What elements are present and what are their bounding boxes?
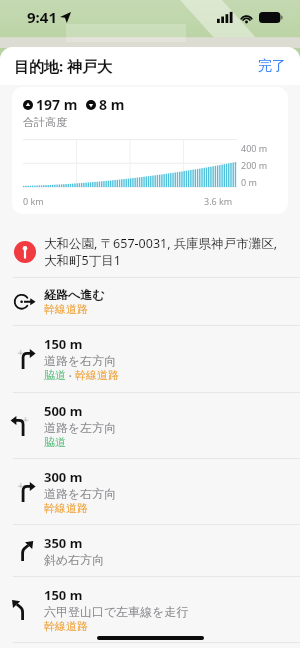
other: Turn right [13,480,37,504]
staticText: 脇道 [44,435,66,449]
button[interactable]: 完了 [244,49,300,83]
other: Destination [14,241,36,263]
staticText: 幹線道路 [75,368,119,382]
staticText: 経路へ進む [44,287,105,302]
button[interactable]: Slight left [0,577,300,643]
staticText: 幹線道路 [44,501,88,515]
button[interactable]: 197 m [12,87,288,214]
button[interactable]: Start route [0,278,300,326]
staticText: 8 m [99,95,125,114]
staticText: 六甲登山口で左車線を走行 [44,604,189,619]
other: Turn left [13,414,37,438]
staticText: 500 m [44,402,83,420]
staticText: 幹線道路 [44,302,88,316]
staticText: 大和公園, 〒657-0031, 兵庫県神戸市灘区, 大和町5丁目1 [44,235,288,268]
staticText: 3.6 km [204,195,233,207]
staticText: 道路を左方向 [44,420,117,435]
button[interactable]: Destination [0,226,300,278]
staticText: 400 m [241,142,268,154]
other: Start route [13,290,37,314]
staticText: 150 m [44,335,83,353]
button[interactable]: Slight right [0,525,300,577]
staticText: 道路を右方向 [44,486,117,501]
staticText: 150 m [44,586,83,604]
staticText: 9:41 [27,7,57,27]
other: Slight left [13,598,37,622]
button[interactable]: Turn right [0,326,300,393]
staticText: 合計高度 [23,115,67,129]
button[interactable]: Turn right [0,459,300,525]
staticText: 300 m [44,468,83,486]
staticText: 200 m [241,159,268,171]
staticText: 197 m [36,95,78,114]
staticText: 350 m [44,534,83,552]
staticText: 0 m [241,176,257,188]
staticText: 0 km [23,195,44,207]
staticText: 完了 [258,57,286,75]
other: Turn right [13,347,37,371]
staticText: 斜め右方向 [44,552,105,567]
button[interactable]: Turn left [0,393,300,459]
staticText: 幹線道路 [44,619,88,633]
staticText: 道路を右方向 [44,353,117,368]
staticText: 脇道 [44,368,66,382]
staticText: 目的地: 神戸大 [14,56,113,76]
other: Slight right [13,539,37,563]
staticText: · [66,368,75,383]
